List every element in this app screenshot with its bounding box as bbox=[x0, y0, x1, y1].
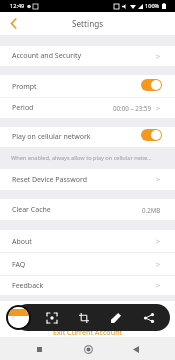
staticText: Clear Cache bbox=[12, 205, 51, 215]
staticText: Period bbox=[12, 103, 34, 113]
staticText: Account and Security bbox=[12, 51, 82, 61]
button[interactable]: Play on cellular network bbox=[0, 127, 175, 147]
button[interactable]: Reset Device Password bbox=[0, 169, 175, 190]
button[interactable]: Back bbox=[126, 339, 146, 359]
staticText: About bbox=[12, 237, 32, 247]
button[interactable]: About bbox=[0, 230, 175, 253]
staticText: Exit Current Account bbox=[53, 327, 123, 337]
button[interactable]: Clear Cache bbox=[0, 199, 175, 220]
staticText: Prompt bbox=[12, 82, 37, 92]
button[interactable]: Toggle bbox=[141, 79, 162, 91]
staticText: Reset Device Password bbox=[12, 175, 88, 185]
button[interactable]: FAQ bbox=[0, 253, 175, 276]
staticText: 0.2MB bbox=[142, 206, 161, 214]
staticText: Feedback bbox=[12, 281, 44, 291]
button[interactable]: Share bbox=[140, 304, 158, 331]
button[interactable]: Back bbox=[0, 12, 26, 35]
button[interactable]: Prompt bbox=[0, 75, 175, 98]
staticText: When enabled, always allow to play on ce… bbox=[11, 154, 152, 162]
staticText: 00:00 – 23:59 bbox=[113, 104, 151, 112]
button[interactable]: Toggle bbox=[141, 129, 162, 141]
button[interactable]: Scroll capture bbox=[43, 304, 61, 331]
button[interactable]: Crop bbox=[75, 304, 93, 331]
button[interactable]: Home bbox=[78, 339, 98, 359]
button[interactable]: Recent apps bbox=[29, 339, 49, 359]
button[interactable]: Feedback bbox=[0, 276, 175, 295]
button[interactable]: Screenshot preview bbox=[6, 305, 31, 330]
staticText: 100% bbox=[145, 2, 160, 10]
button[interactable]: Draw bbox=[107, 304, 125, 331]
button[interactable]: Period bbox=[0, 98, 175, 118]
staticText: Play on cellular network bbox=[12, 132, 91, 142]
button[interactable]: Account and Security bbox=[0, 46, 175, 66]
staticText: Settings bbox=[72, 18, 104, 29]
button[interactable]: Exit Current Account bbox=[0, 301, 175, 337]
staticText: FAQ bbox=[12, 260, 26, 270]
staticText: 12:49 bbox=[10, 2, 25, 10]
